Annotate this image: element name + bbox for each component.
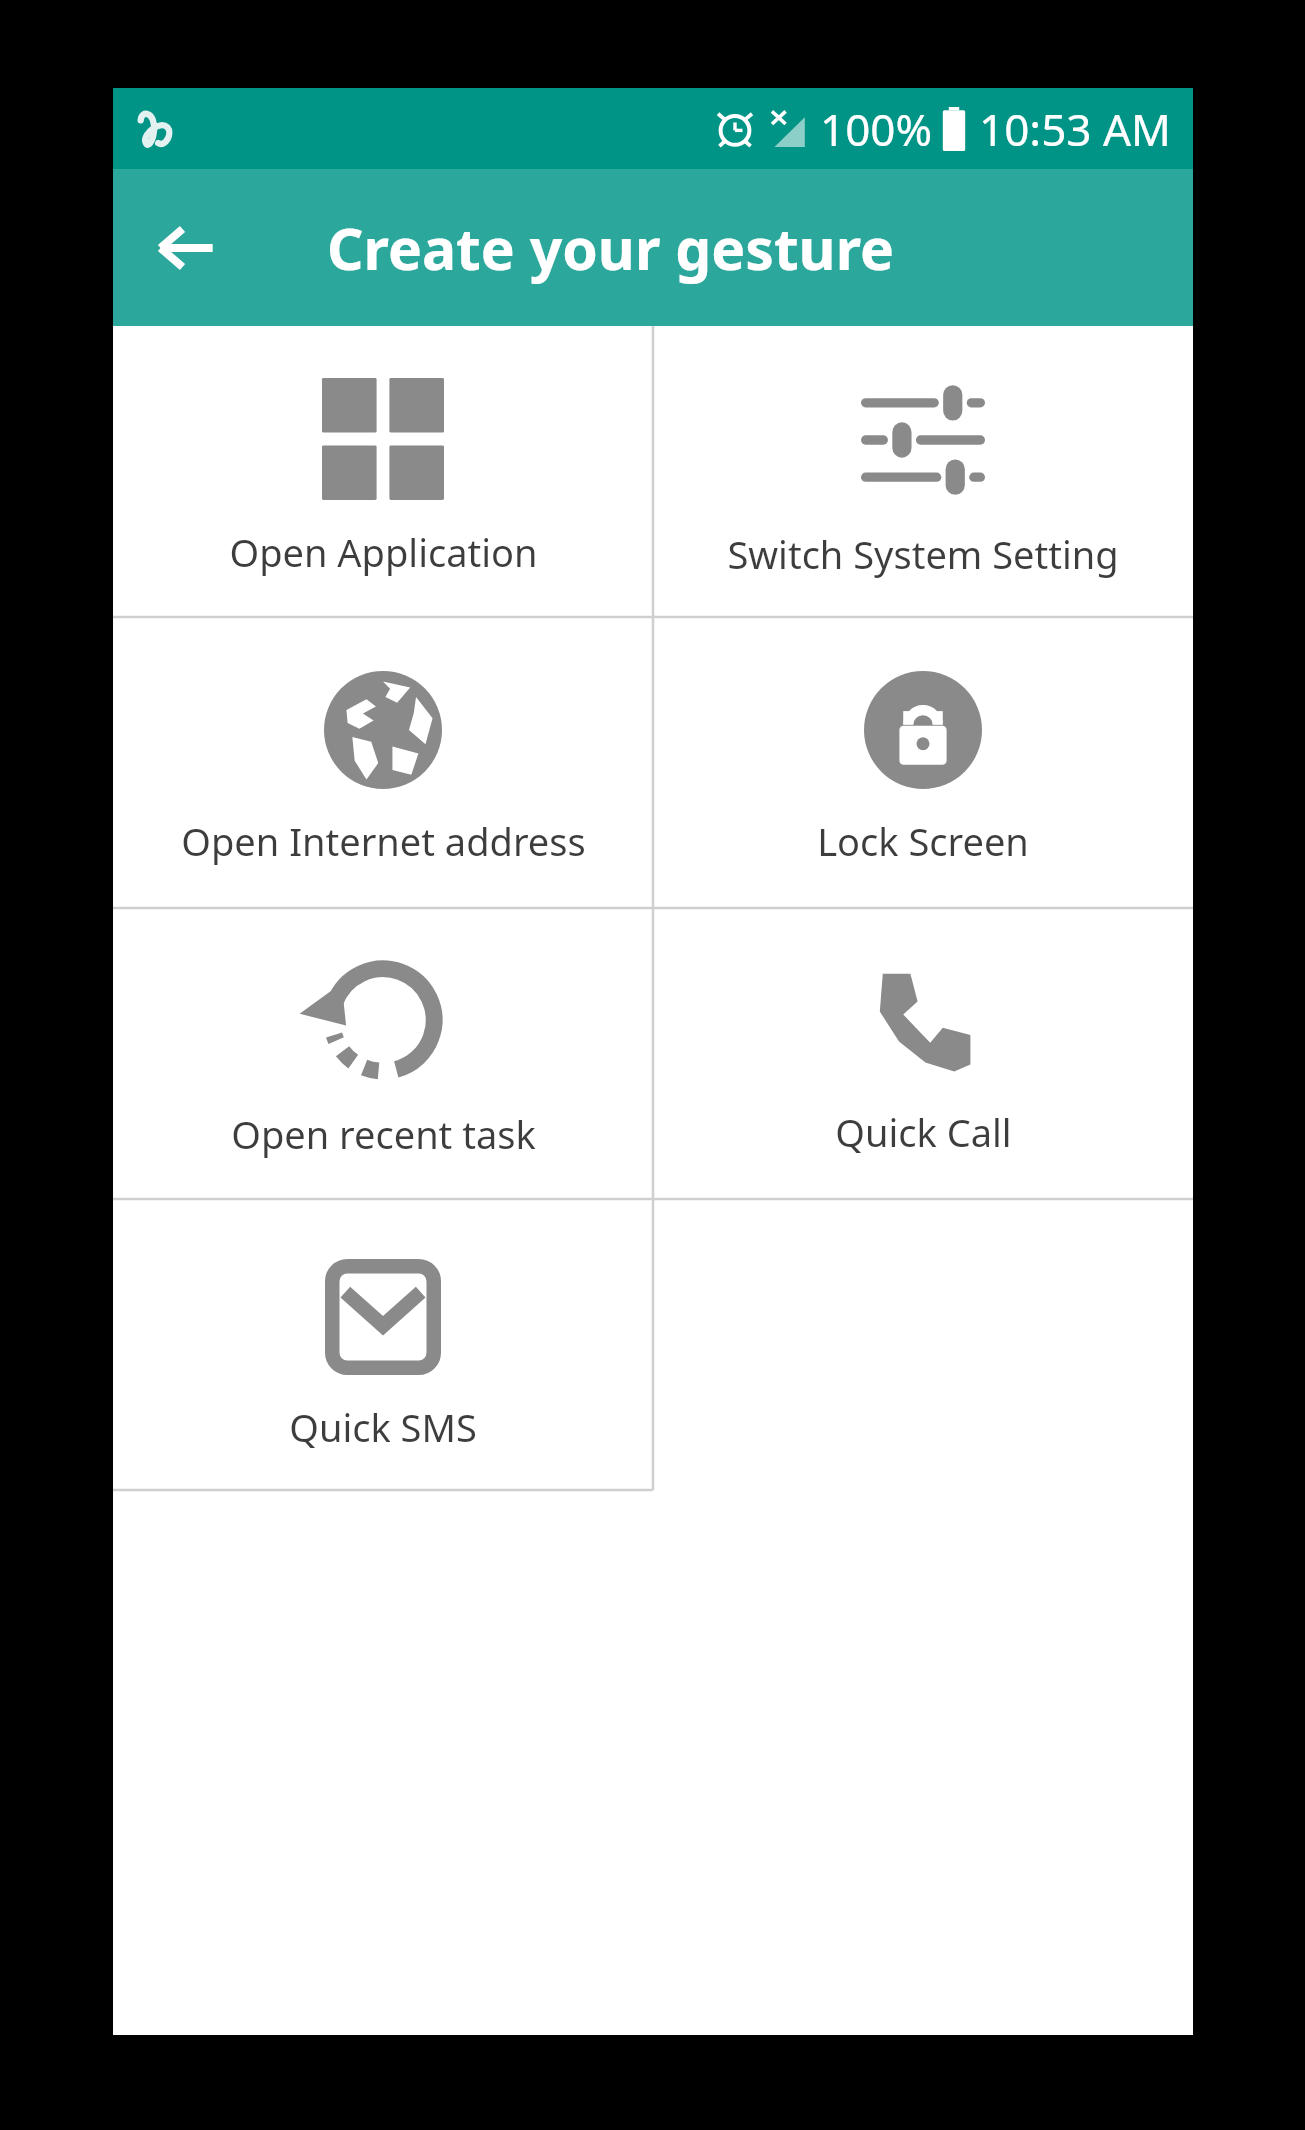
button[interactable]: Quick SMS <box>113 1199 653 1490</box>
staticText: Switch System Setting <box>727 528 1119 580</box>
staticText: Open recent task <box>231 1108 536 1160</box>
button[interactable]: Open recent task <box>113 908 653 1199</box>
button[interactable]: Lock Screen <box>653 617 1193 908</box>
button[interactable]: Switch System Setting <box>653 326 1193 617</box>
staticText: Create your gesture <box>327 209 895 287</box>
staticText: Lock Screen <box>817 815 1029 867</box>
button[interactable]: Quick Call <box>653 908 1193 1199</box>
staticText: Open Application <box>229 526 538 578</box>
button[interactable]: Open Application <box>113 326 653 617</box>
staticText: Open Internet address <box>181 815 586 867</box>
button[interactable]: Back <box>141 203 231 293</box>
staticText: 10:53 AM <box>979 99 1171 159</box>
staticText: 100% <box>820 99 933 159</box>
staticText: Quick SMS <box>289 1401 477 1453</box>
button[interactable]: Open Internet address <box>113 617 653 908</box>
staticText: Quick Call <box>835 1106 1012 1158</box>
